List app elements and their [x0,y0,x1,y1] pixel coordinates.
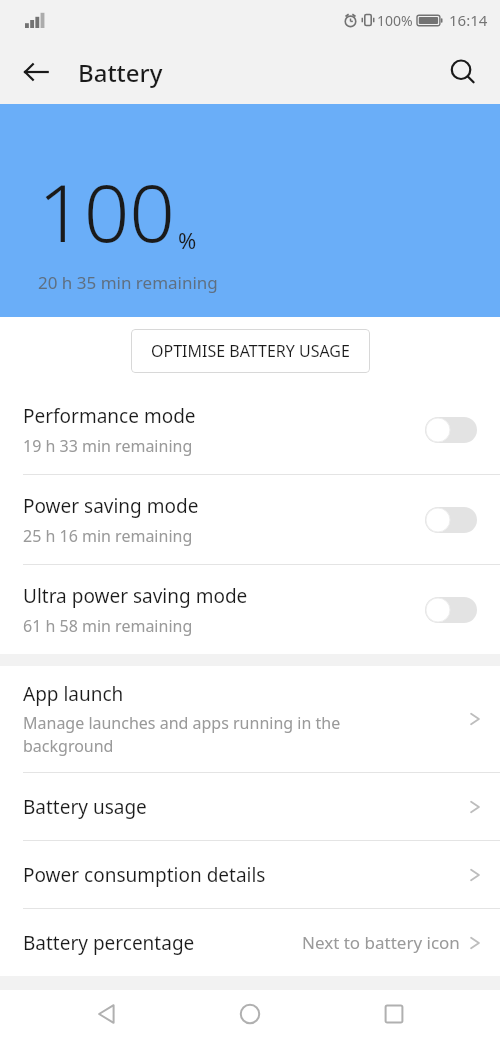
staticText: 100% [377,11,413,30]
button[interactable]: App launch [0,666,500,772]
button[interactable]: Recent apps [357,990,431,1037]
staticText: 61 h 58 min remaining [23,615,193,637]
button[interactable]: Toggle [425,417,477,443]
button[interactable]: Battery percentage [0,909,500,976]
button[interactable]: Battery usage [0,773,500,840]
staticText: 100 [38,156,176,265]
staticText: 19 h 33 min remaining [23,435,193,457]
staticText: 16:14 [449,10,488,30]
staticText: Battery [78,56,163,89]
button[interactable]: Back [70,990,144,1037]
staticText: Manage launches and apps running in the … [23,712,341,757]
staticText: Power saving mode [23,493,199,519]
button[interactable]: Search [437,46,489,98]
staticText: 20 h 35 min remaining [38,271,218,294]
button[interactable]: Toggle [425,507,477,533]
staticText: Ultra power saving mode [23,583,248,609]
button[interactable]: Performance mode [0,385,500,474]
staticText: 25 h 16 min remaining [23,525,193,547]
button[interactable]: OPTIMISE BATTERY USAGE [131,329,370,373]
staticText: Performance mode [23,403,196,429]
staticText: Power consumption details [23,862,266,888]
staticText: OPTIMISE BATTERY USAGE [151,340,350,362]
staticText: App launch [23,681,124,707]
staticText: Battery usage [23,794,147,820]
staticText: Battery percentage [23,930,195,956]
button[interactable]: Power saving mode [0,475,500,564]
staticText: Next to battery icon [302,931,460,954]
button[interactable]: Toggle [425,597,477,623]
button[interactable]: Back [10,46,62,98]
staticText: % [178,225,197,255]
button[interactable]: Power consumption details [0,841,500,908]
button[interactable]: Ultra power saving mode [0,565,500,654]
button[interactable]: Home [213,990,287,1037]
